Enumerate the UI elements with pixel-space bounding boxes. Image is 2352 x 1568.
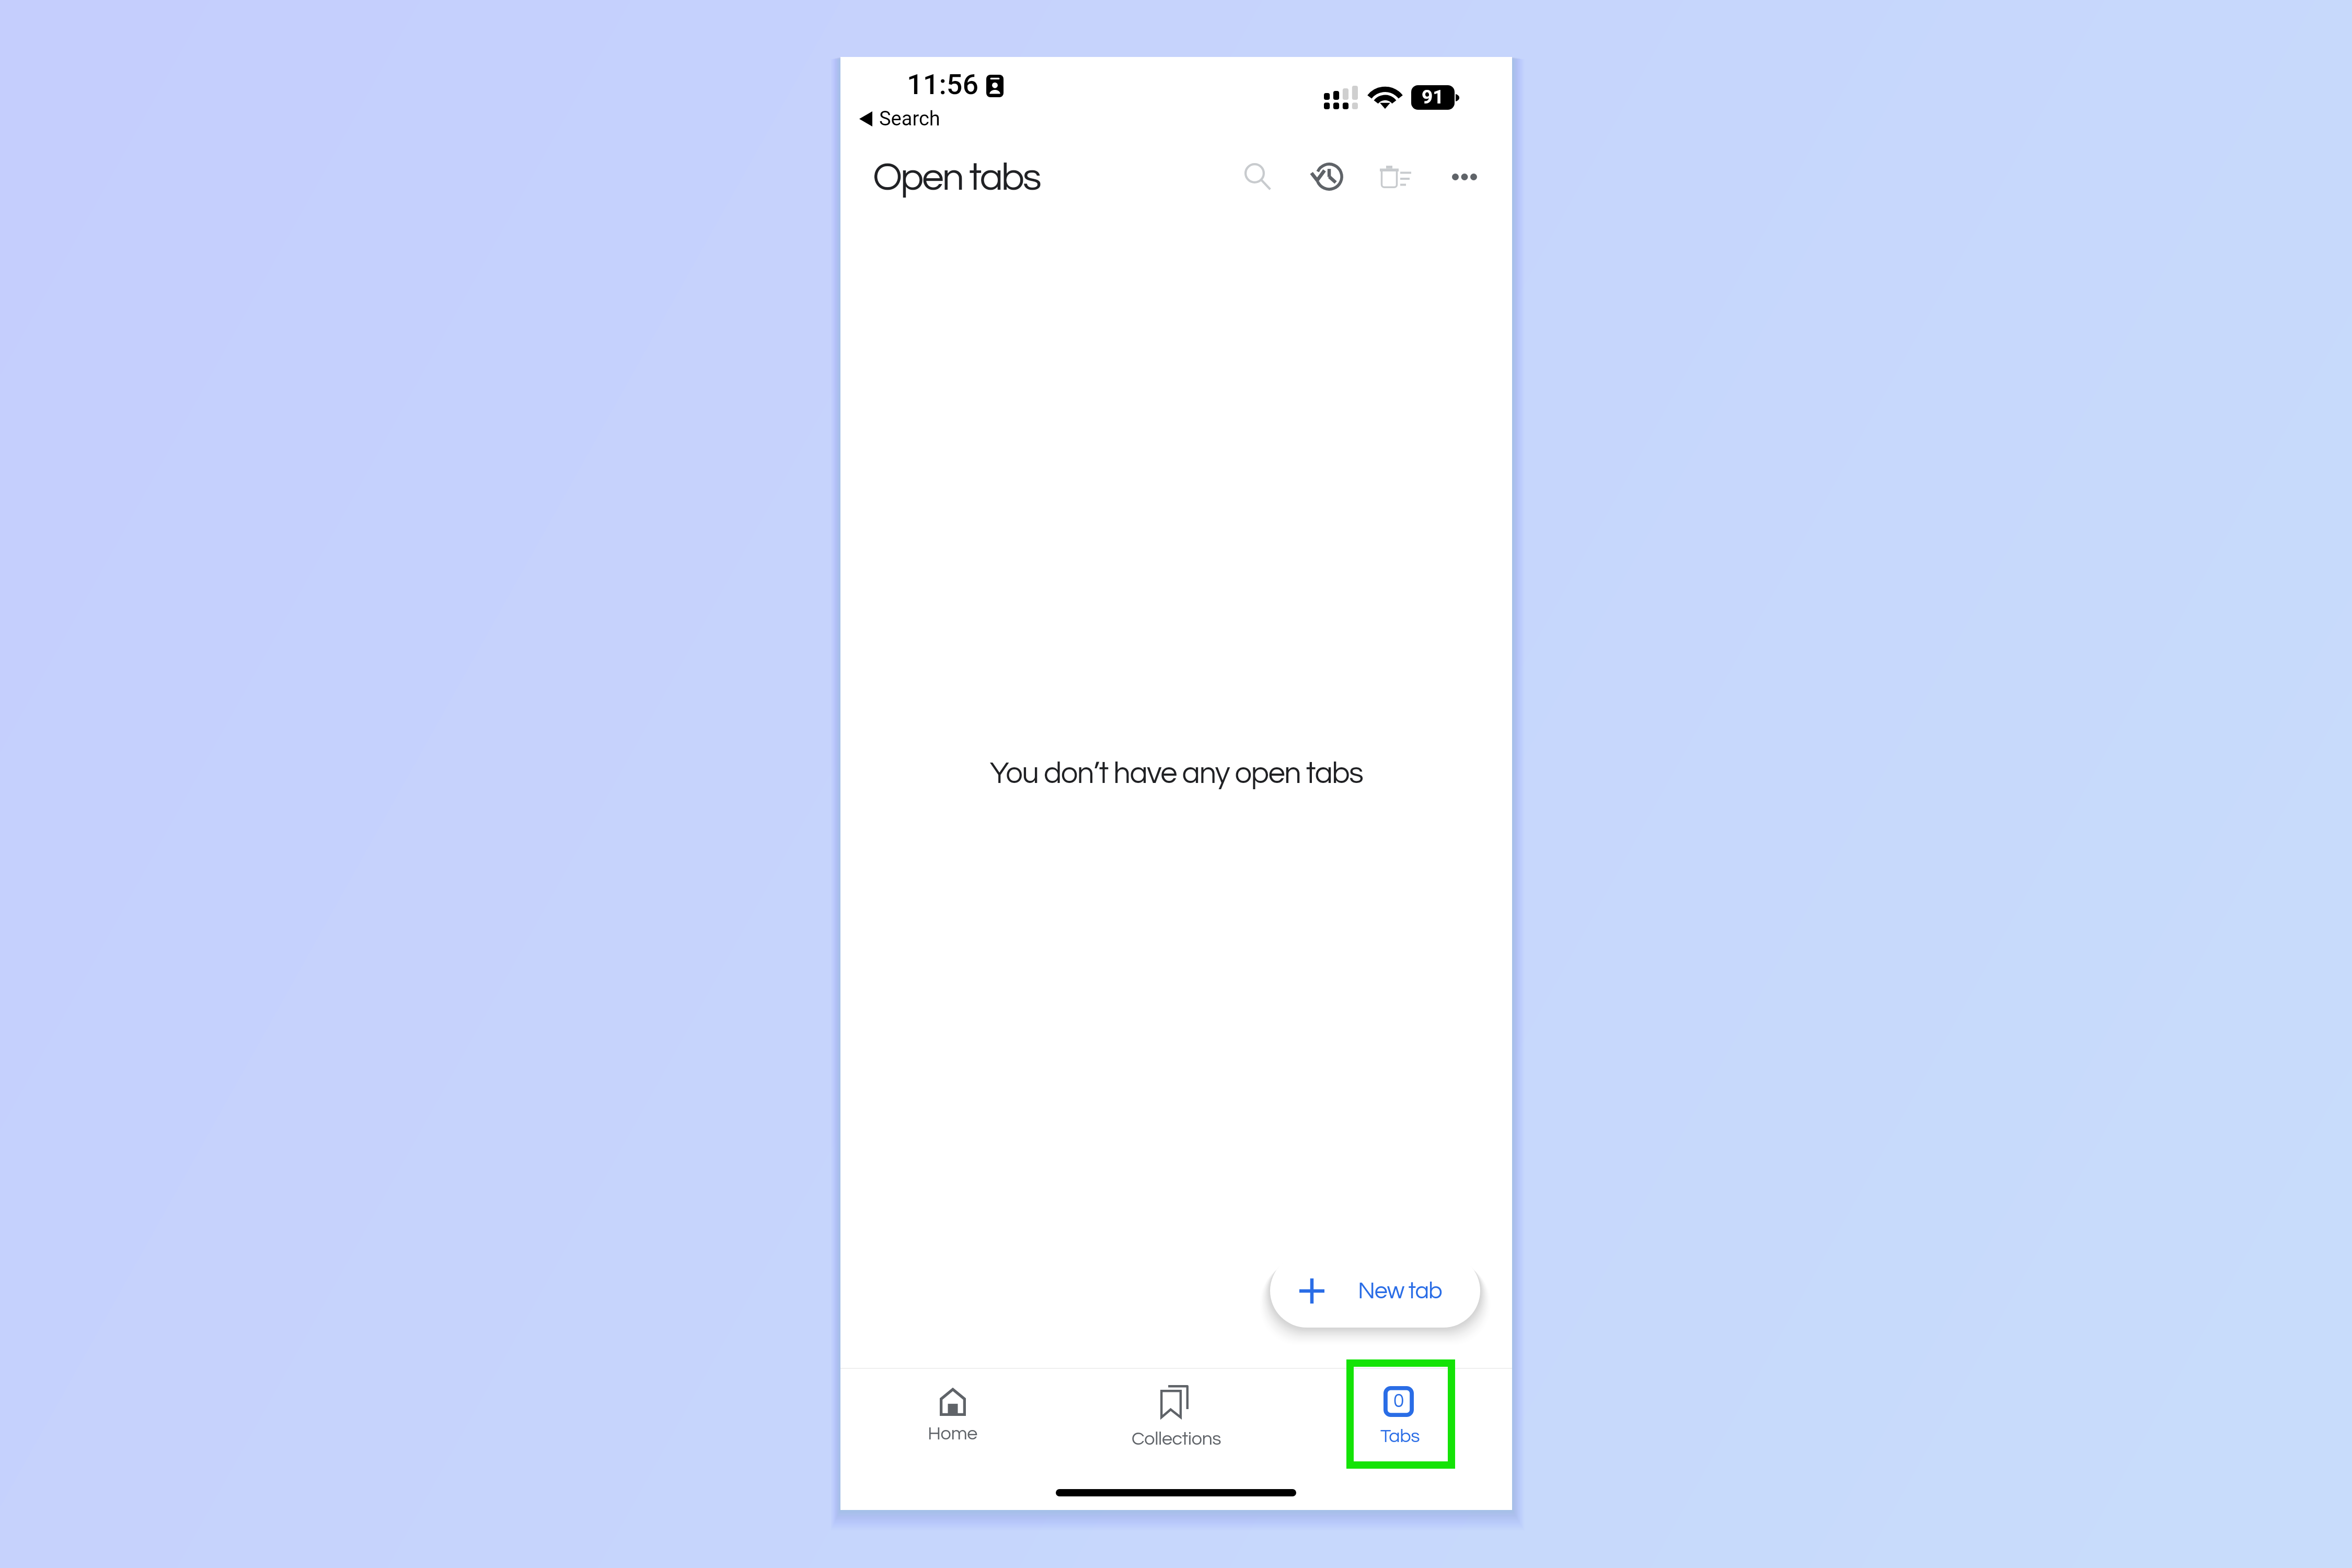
staticText: 11:56 [907, 68, 979, 101]
button[interactable]: More options [1435, 147, 1494, 206]
staticText: Tabs [1380, 1426, 1420, 1446]
button[interactable]: 0 [1288, 1368, 1512, 1478]
staticText: You don’t have any open tabs [840, 758, 1512, 789]
button[interactable]: Close all tabs [1366, 147, 1425, 206]
button[interactable]: Home [840, 1368, 1065, 1478]
staticText: Home [928, 1424, 977, 1443]
button[interactable]: Search [859, 107, 940, 131]
staticText: Search [879, 107, 940, 131]
button[interactable]: Search [1228, 147, 1287, 206]
staticText: 91 [1422, 86, 1444, 108]
staticText: Collections [1132, 1429, 1221, 1448]
button[interactable]: Collections [1065, 1368, 1288, 1478]
staticText: 0 [1393, 1391, 1404, 1411]
staticText: New tab [1358, 1279, 1442, 1303]
button[interactable]: Recent tabs [1299, 147, 1358, 206]
staticText: Open tabs [873, 157, 1040, 198]
button[interactable]: New tab [1270, 1254, 1480, 1328]
